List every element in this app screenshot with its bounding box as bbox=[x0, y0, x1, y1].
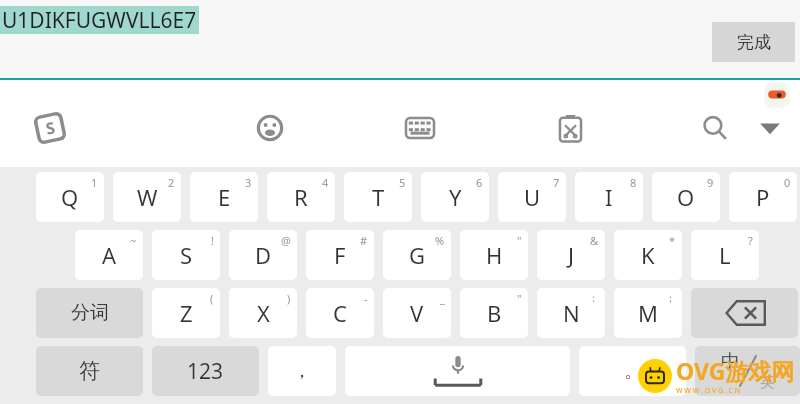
staticText: B bbox=[487, 298, 502, 328]
button[interactable]: V bbox=[383, 288, 451, 338]
button[interactable]: Notification bbox=[764, 82, 790, 108]
staticText: U1DIKFUGWVLL6E7 bbox=[2, 6, 197, 34]
staticText: * bbox=[669, 233, 676, 248]
button[interactable]: Q bbox=[36, 172, 104, 222]
button[interactable]: 符 bbox=[36, 346, 143, 396]
staticText: 符 bbox=[79, 358, 100, 384]
button[interactable]: C bbox=[306, 288, 374, 338]
button[interactable]: M bbox=[614, 288, 682, 338]
button[interactable]: S bbox=[152, 230, 220, 280]
button[interactable]: A bbox=[75, 230, 143, 280]
staticText: ~ bbox=[130, 233, 137, 248]
staticText: 2 bbox=[168, 175, 175, 190]
button[interactable]: 123 bbox=[152, 346, 259, 396]
staticText: ? bbox=[748, 233, 753, 248]
button[interactable] bbox=[691, 288, 798, 338]
staticText: - bbox=[364, 291, 368, 306]
staticText: N bbox=[563, 298, 580, 328]
staticText: 1 bbox=[91, 175, 98, 190]
staticText: ， bbox=[293, 360, 311, 383]
button[interactable]: Clipboard bbox=[545, 108, 595, 148]
button[interactable]: Y bbox=[421, 172, 489, 222]
staticText: # bbox=[360, 233, 368, 248]
button[interactable]: D bbox=[229, 230, 297, 280]
button[interactable]: Sogou input bbox=[0, 108, 100, 148]
button[interactable]: W bbox=[113, 172, 181, 222]
staticText: 3 bbox=[245, 175, 252, 190]
button[interactable]: O bbox=[652, 172, 720, 222]
button[interactable]: H bbox=[460, 230, 528, 280]
staticText: O bbox=[677, 182, 695, 212]
staticText: 完成 bbox=[737, 32, 771, 53]
staticText: S bbox=[180, 240, 193, 270]
staticText: 7 bbox=[553, 175, 560, 190]
staticText: P bbox=[756, 182, 770, 212]
staticText: 5 bbox=[399, 175, 406, 190]
staticText: ! bbox=[211, 233, 214, 248]
staticText: E bbox=[218, 182, 231, 212]
staticText: J bbox=[568, 240, 575, 270]
staticText: & bbox=[590, 233, 599, 248]
button[interactable]: Keyboard layout bbox=[395, 108, 445, 148]
button[interactable]: Collapse keyboard bbox=[740, 108, 800, 148]
button[interactable]: G bbox=[383, 230, 451, 280]
staticText: 0 bbox=[784, 175, 791, 190]
staticText: U bbox=[524, 182, 541, 212]
staticText: R bbox=[294, 182, 308, 212]
staticText: 。 bbox=[624, 360, 642, 383]
staticText: Y bbox=[449, 182, 462, 212]
staticText: " bbox=[517, 233, 522, 248]
staticText: L bbox=[719, 240, 731, 270]
staticText: ： bbox=[588, 291, 599, 305]
staticText: ； bbox=[665, 291, 676, 305]
button[interactable]: X bbox=[229, 288, 297, 338]
staticText: H bbox=[486, 240, 503, 270]
staticText: 英 bbox=[760, 373, 775, 392]
button[interactable]: L bbox=[691, 230, 759, 280]
button[interactable]: U bbox=[498, 172, 566, 222]
staticText: I bbox=[605, 182, 613, 212]
button[interactable]: T bbox=[344, 172, 412, 222]
staticText: @ bbox=[281, 233, 291, 248]
staticText: Z bbox=[180, 298, 193, 328]
button[interactable]: Search bbox=[690, 108, 740, 148]
staticText: 6 bbox=[476, 175, 483, 190]
staticText: F bbox=[334, 240, 346, 270]
staticText: C bbox=[333, 298, 347, 328]
button[interactable]: R bbox=[267, 172, 335, 222]
button[interactable]: K bbox=[614, 230, 682, 280]
staticText: G bbox=[409, 240, 426, 270]
staticText: 4 bbox=[322, 175, 329, 190]
staticText: W bbox=[137, 182, 158, 212]
button[interactable]: N bbox=[537, 288, 605, 338]
button[interactable]: F bbox=[306, 230, 374, 280]
staticText: 9 bbox=[707, 175, 714, 190]
button[interactable]: 中 bbox=[695, 346, 800, 396]
button[interactable]: P bbox=[729, 172, 797, 222]
button[interactable]: 分词 bbox=[36, 288, 143, 338]
button[interactable]: Z bbox=[152, 288, 220, 338]
button[interactable]: E bbox=[190, 172, 258, 222]
staticText: W W W . O V G . C N bbox=[676, 386, 741, 396]
staticText: % bbox=[435, 233, 445, 248]
button[interactable]: ， bbox=[268, 346, 336, 396]
button[interactable] bbox=[345, 346, 570, 396]
staticText: 分词 bbox=[71, 301, 109, 325]
staticText: OVG游戏网 bbox=[676, 355, 795, 386]
staticText: 8 bbox=[630, 175, 637, 190]
button[interactable]: 。 bbox=[579, 346, 686, 396]
staticText: ) bbox=[287, 291, 291, 306]
staticText: Q bbox=[61, 182, 79, 212]
button[interactable]: B bbox=[460, 288, 528, 338]
staticText: ( bbox=[210, 291, 214, 306]
staticText: _ bbox=[440, 291, 445, 306]
staticText: M bbox=[638, 298, 658, 328]
staticText: K bbox=[641, 240, 655, 270]
button[interactable]: 完成 bbox=[712, 22, 795, 62]
button[interactable]: I bbox=[575, 172, 643, 222]
staticText: 中 bbox=[721, 350, 740, 374]
staticText: A bbox=[102, 240, 117, 270]
button[interactable]: Emoji bbox=[245, 108, 295, 148]
staticText: V bbox=[410, 298, 424, 328]
button[interactable]: J bbox=[537, 230, 605, 280]
